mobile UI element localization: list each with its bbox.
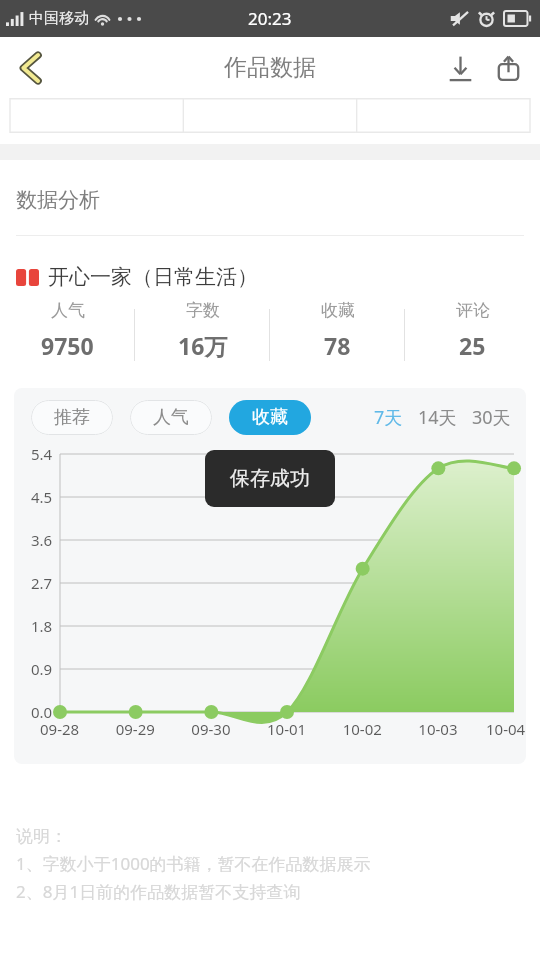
staticText: 16万 [178, 330, 228, 361]
staticText: 推荐 [54, 406, 90, 429]
button[interactable]: Back [2, 40, 58, 96]
staticText: 78 [324, 330, 351, 361]
button[interactable]: Download [436, 44, 484, 92]
staticText: 评论 [456, 300, 490, 321]
staticText: 字数 [186, 300, 220, 321]
staticText: 9750 [41, 330, 94, 361]
staticText: 收藏 [252, 406, 288, 429]
button[interactable]: 推荐 [31, 400, 113, 435]
staticText: 25 [459, 330, 486, 361]
button[interactable]: Share [484, 44, 532, 92]
staticText: 保存成功 [230, 466, 310, 491]
staticText: 2、8月1日前的作品数据暂不支持查询 [16, 880, 301, 903]
staticText: 人气 [153, 406, 189, 429]
staticText: 14天 [418, 405, 457, 430]
button[interactable]: 收藏 [229, 400, 311, 435]
staticText: 作品数据 [224, 53, 316, 82]
staticText: 人气 [51, 300, 85, 321]
button[interactable]: 30天 [470, 400, 513, 435]
button[interactable]: 7天 [372, 400, 405, 435]
staticText: 开心一家（日常生活） [48, 264, 258, 290]
staticText: 30天 [472, 405, 511, 430]
button[interactable]: 人气 [130, 400, 212, 435]
staticText: 收藏 [321, 300, 355, 321]
staticText: 中国移动 [29, 9, 89, 28]
staticText: 数据分析 [16, 187, 100, 213]
staticText: 20:23 [248, 7, 292, 30]
staticText: 7天 [374, 405, 403, 430]
staticText: 1、字数小于1000的书籍，暂不在作品数据展示 [16, 852, 371, 875]
staticText: 说明： [16, 826, 67, 847]
button[interactable]: 14天 [416, 400, 459, 435]
